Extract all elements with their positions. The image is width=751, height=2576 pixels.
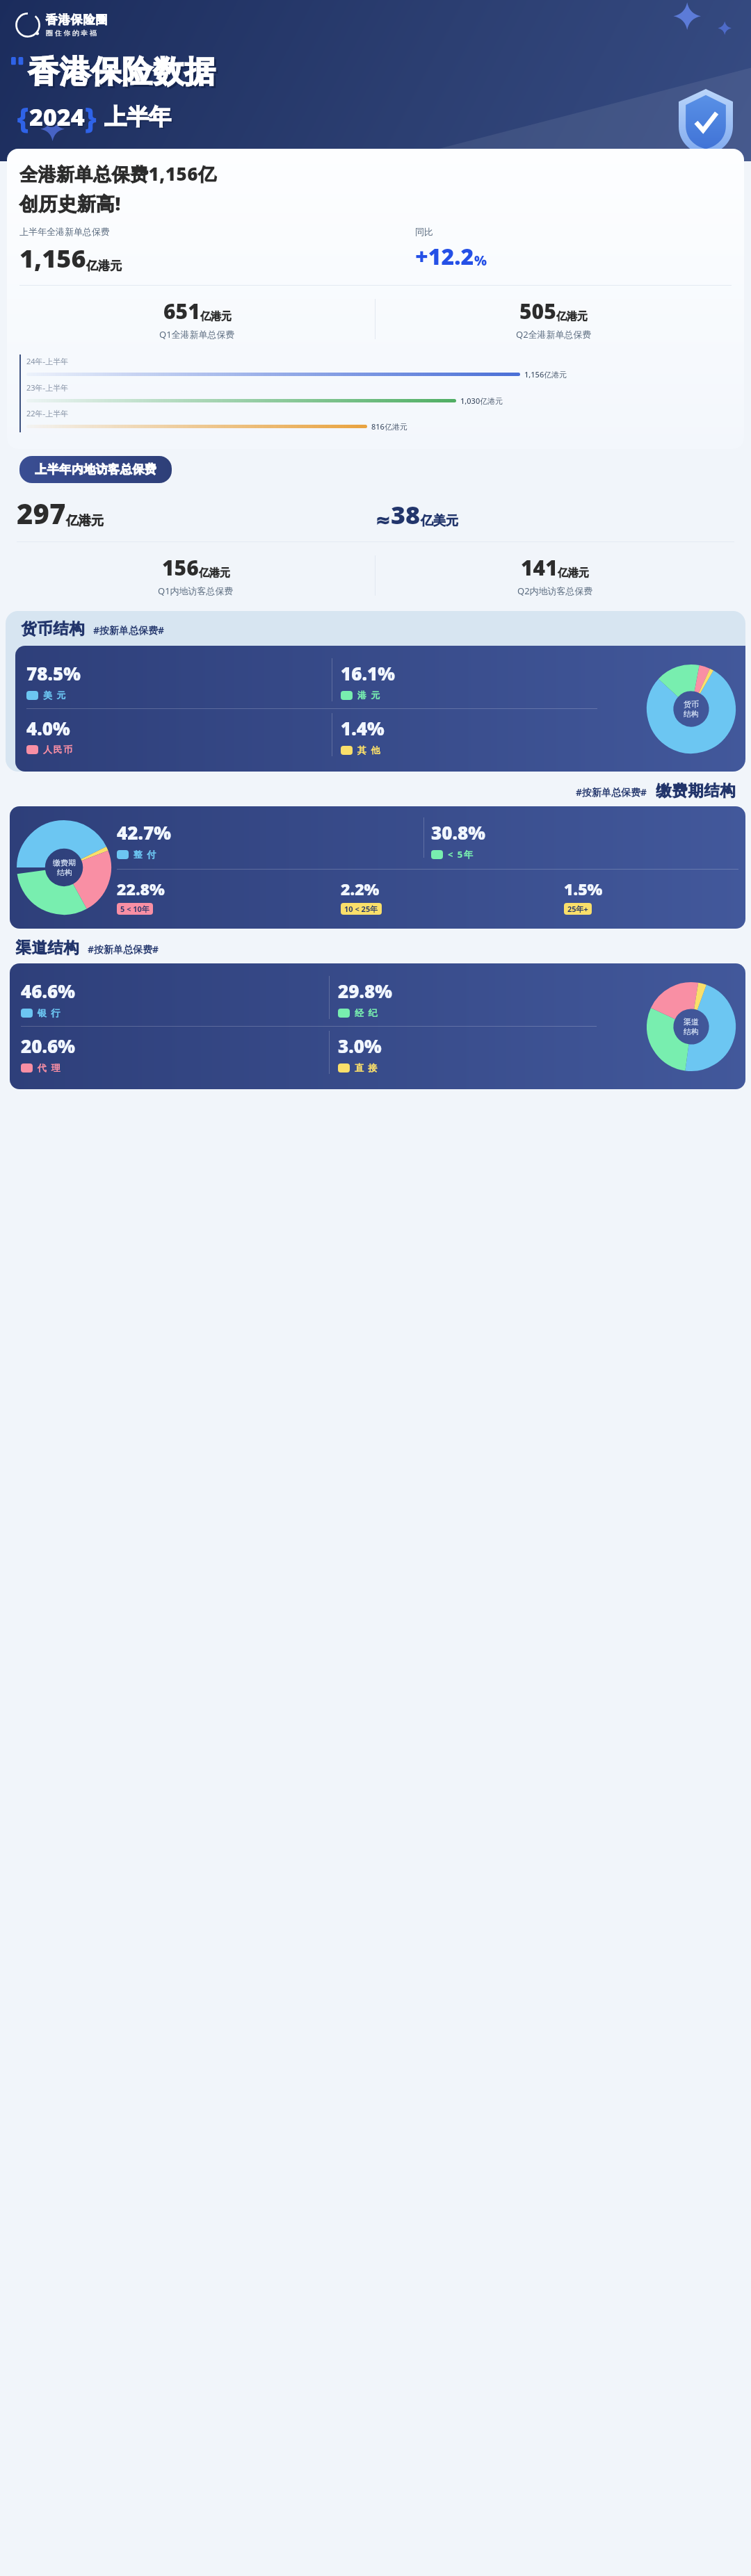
staticText: 结构 — [684, 1027, 699, 1036]
staticText: Q1内地访客总保费 — [158, 585, 234, 597]
staticText: % — [474, 252, 487, 270]
button[interactable]: 2.2% — [341, 875, 564, 918]
staticText: 经 纪 — [355, 1006, 378, 1019]
staticText: 上半年 — [106, 104, 172, 132]
staticText: 亿美元 — [421, 513, 458, 529]
staticText: 141 — [521, 553, 558, 582]
staticText: 25年+ — [567, 904, 588, 914]
staticText: 香港保险数据 — [30, 55, 218, 93]
staticText: 156 — [162, 553, 199, 582]
button[interactable]: 30.8% — [431, 817, 738, 863]
staticText: ≈ — [375, 510, 391, 530]
button[interactable]: 1.5% — [564, 875, 738, 918]
button[interactable]: 20.6% — [21, 1031, 329, 1077]
staticText: Q1全港新单总保费 — [159, 328, 235, 341]
staticText: 505 — [519, 297, 556, 325]
staticText: 同比 — [415, 226, 433, 237]
button[interactable]: 156 — [17, 552, 375, 598]
staticText: 1,156亿港元 — [524, 369, 567, 380]
staticText: 5 < 10年 — [120, 904, 150, 914]
staticText: 30.8% — [431, 820, 485, 845]
staticText: 1,030亿港元 — [460, 396, 503, 406]
staticText: 全港新单总保费1,156亿 — [19, 161, 217, 186]
staticText: 圈住你的幸福 — [45, 28, 97, 38]
staticText: 上半年 — [104, 103, 171, 131]
staticText: 亿港元 — [558, 566, 589, 580]
staticText: 2024 — [31, 102, 86, 134]
staticText: Q2内地访客总保费 — [517, 585, 593, 597]
staticText: 24年-上半年 — [26, 356, 69, 366]
staticText: } — [85, 98, 97, 136]
staticText: 货币 — [684, 699, 699, 709]
staticText: 1.4% — [341, 716, 385, 740]
staticText: 1.5% — [564, 878, 603, 899]
staticText: 16.1% — [341, 661, 395, 685]
staticText: 缴费期结构 — [656, 781, 736, 801]
staticText: 整 付 — [134, 848, 157, 861]
staticText: 42.7% — [117, 820, 171, 845]
button[interactable]: 651 — [19, 295, 375, 342]
staticText: 亿港元 — [556, 310, 588, 323]
staticText: { — [17, 98, 29, 136]
staticText: 银 行 — [38, 1006, 61, 1019]
staticText: 2.2% — [341, 878, 380, 899]
staticText: 其 他 — [357, 744, 381, 756]
staticText: 20.6% — [21, 1034, 75, 1058]
staticText: 亿港元 — [86, 259, 122, 273]
staticText: 3.0% — [338, 1034, 382, 1058]
button[interactable]: 46.6% — [21, 976, 329, 1022]
button[interactable]: 42.7% — [117, 817, 423, 863]
staticText: 结构 — [684, 709, 699, 719]
staticText: #按新单总保费# — [576, 785, 647, 799]
staticText: 亿港元 — [200, 310, 232, 323]
staticText: 2024 — [29, 101, 85, 133]
staticText: 香港保险数据 — [28, 53, 216, 91]
staticText: 38 — [391, 498, 421, 532]
staticText: #按新单总保费# — [93, 623, 165, 637]
staticText: 10 < 25年 — [344, 904, 378, 914]
staticText: 货币结构 — [21, 619, 85, 639]
staticText: Q2全港新单总保费 — [516, 328, 592, 341]
staticText: 香港保险圈 — [45, 13, 108, 27]
staticText: < 5年 — [448, 848, 474, 861]
staticText: 亿港元 — [199, 566, 230, 580]
staticText: 美 元 — [43, 689, 67, 701]
staticText: 人民币 — [43, 744, 74, 755]
button[interactable]: 141 — [375, 552, 734, 598]
staticText: 缴费期 — [53, 858, 76, 867]
staticText: 上半年全港新单总保费 — [19, 226, 110, 237]
staticText: 渠道 — [684, 1017, 699, 1027]
staticText: 港 元 — [357, 689, 381, 701]
staticText: 651 — [163, 297, 200, 325]
button[interactable]: 1.4% — [341, 713, 647, 759]
button[interactable]: 29.8% — [338, 976, 647, 1022]
staticText: 46.6% — [21, 979, 75, 1003]
button[interactable]: 上半年内地访客总保费 — [19, 456, 172, 483]
staticText: 22年-上半年 — [26, 408, 69, 418]
staticText: 816亿港元 — [371, 421, 407, 432]
button[interactable]: 4.0% — [26, 713, 332, 758]
staticText: 78.5% — [26, 661, 81, 685]
staticText: 1,156 — [19, 241, 86, 275]
staticText: 29.8% — [338, 979, 392, 1003]
staticText: 297 — [17, 494, 66, 532]
staticText: 代 理 — [38, 1061, 61, 1074]
staticText: 结构 — [57, 867, 72, 877]
button[interactable]: 505 — [375, 295, 732, 342]
staticText: 4.0% — [26, 716, 70, 740]
button[interactable]: 78.5% — [26, 658, 332, 704]
button[interactable]: 保障盾牌 — [679, 89, 733, 156]
staticText: 22.8% — [117, 878, 165, 899]
staticText: 23年-上半年 — [26, 382, 69, 393]
staticText: 创历史新高! — [19, 190, 121, 216]
staticText: 上半年内地访客总保费 — [35, 462, 156, 477]
staticText: #按新单总保费# — [88, 943, 159, 956]
button[interactable]: 22.8% — [117, 875, 341, 918]
staticText: 直 接 — [355, 1061, 378, 1074]
staticText: +12.2 — [415, 241, 474, 272]
button[interactable]: 香港保险圈 Logo — [15, 13, 108, 38]
staticText: 亿港元 — [66, 513, 104, 529]
staticText: 渠道结构 — [15, 938, 79, 958]
button[interactable]: 16.1% — [341, 658, 647, 704]
button[interactable]: 3.0% — [338, 1031, 647, 1077]
